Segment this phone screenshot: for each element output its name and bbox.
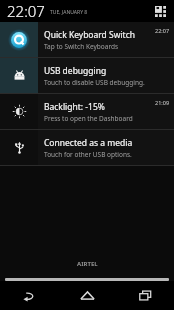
staticText: Touch for other USB options.	[44, 150, 132, 159]
staticText: Touch to disable USB debugging.	[44, 78, 145, 87]
button[interactable]: Drag handle	[5, 278, 169, 281]
staticText: USB debugging connected	[44, 65, 145, 77]
staticText: Press to open the Dashboard	[44, 114, 133, 123]
button[interactable]: Quick settings	[151, 2, 169, 20]
button[interactable]: Recent apps	[116, 281, 174, 310]
button[interactable]: Quick Keyboard Switch	[0, 22, 174, 57]
staticText: Quick Keyboard Switch	[44, 29, 135, 41]
staticText: Tap to Switch Keyboards	[44, 42, 119, 51]
button[interactable]: USB debugging connected	[0, 58, 174, 93]
button[interactable]: Home	[58, 281, 116, 310]
staticText: Backlight: -15%	[44, 101, 105, 113]
staticText: 22:07	[7, 1, 45, 21]
staticText: TUE, JANUARY 8	[50, 9, 88, 16]
button[interactable]: Backlight: -15%	[0, 94, 174, 129]
staticText: Connected as a media device	[44, 137, 145, 149]
button[interactable]: Connected as a media device	[0, 130, 174, 165]
button[interactable]: Back	[0, 281, 58, 310]
staticText: AIRTEL	[77, 260, 98, 268]
staticText: 21:09	[155, 99, 170, 106]
staticText: 22:07	[155, 27, 170, 34]
